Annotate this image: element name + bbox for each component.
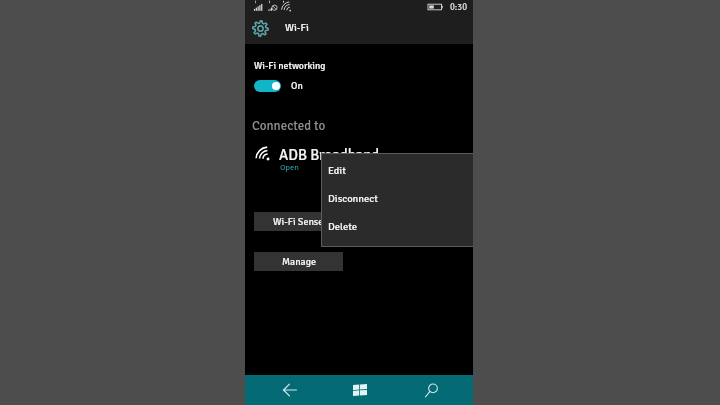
staticText: Manage	[282, 256, 316, 268]
staticText: Wi-Fi	[285, 21, 309, 34]
staticText: Edit	[328, 164, 346, 177]
staticText: Connected to	[252, 118, 326, 134]
staticText: Disconnect	[328, 192, 378, 205]
button[interactable]: Wi-Fi	[245, 16, 473, 44]
staticText: 0:30	[450, 2, 467, 13]
button[interactable]: Delete	[321, 212, 473, 240]
button[interactable]: Edit	[321, 156, 473, 184]
staticText: Delete	[328, 220, 358, 233]
button[interactable]: Back	[252, 375, 328, 405]
button[interactable]: ADB Broadband	[256, 146, 406, 180]
staticText: Wi-Fi networking	[254, 60, 326, 72]
staticText: ADB Broadband	[279, 146, 380, 164]
staticText: On	[291, 80, 303, 92]
button[interactable]: Search	[393, 375, 469, 405]
button[interactable]: Wi-Fi Sense	[254, 212, 343, 231]
button[interactable]: Disconnect	[321, 184, 473, 212]
staticText: Wi-Fi Sense	[273, 216, 324, 228]
button[interactable]: On	[254, 78, 293, 94]
button[interactable]: Start	[322, 374, 398, 404]
staticText: Open	[280, 162, 299, 172]
button[interactable]: Manage	[254, 252, 343, 271]
